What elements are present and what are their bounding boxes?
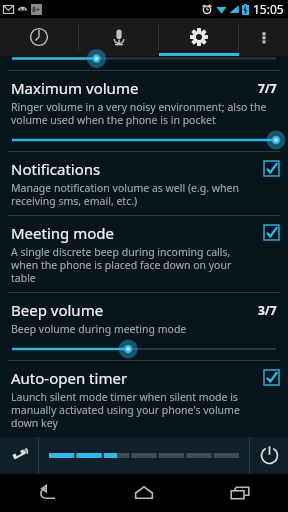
button[interactable]: Power bbox=[250, 437, 288, 474]
button[interactable] bbox=[39, 437, 249, 474]
staticText: 3/7 bbox=[258, 302, 277, 318]
staticText: Launch silent mode timer when silent mod… bbox=[11, 390, 240, 430]
button[interactable]: Auto-open timer bbox=[0, 361, 288, 437]
button[interactable] bbox=[0, 56, 288, 70]
button[interactable]: Home bbox=[96, 474, 192, 512]
button[interactable]: More options bbox=[239, 18, 288, 56]
button[interactable]: Maximum volume bbox=[0, 71, 288, 151]
button[interactable] bbox=[0, 131, 288, 149]
staticText: 8+ bbox=[32, 5, 41, 15]
button[interactable]: Beep volume bbox=[0, 293, 288, 360]
staticText: Meeting mode bbox=[11, 223, 114, 243]
staticText: 15:05 bbox=[253, 1, 284, 17]
staticText: Beep volume during meeting mode bbox=[11, 322, 187, 336]
button[interactable]: Ringer mode bbox=[0, 437, 38, 474]
button[interactable]: Timer bbox=[0, 18, 78, 56]
staticText: Notifications bbox=[11, 159, 101, 179]
staticText: A single discrete beep during incoming c… bbox=[11, 245, 232, 285]
staticText: Maximum volume bbox=[11, 78, 258, 98]
button[interactable]: Settings bbox=[159, 18, 238, 56]
staticText: Ringer volume in a very noisy environmen… bbox=[11, 100, 267, 127]
button[interactable]: Back bbox=[0, 474, 96, 512]
button[interactable]: Meeting mode bbox=[0, 216, 288, 292]
button[interactable]: Recents bbox=[192, 474, 288, 512]
button[interactable]: Notifications bbox=[0, 152, 288, 215]
staticText: Manage notification volume as well (e.g.… bbox=[11, 181, 239, 208]
button[interactable]: Voice bbox=[79, 18, 158, 56]
button[interactable] bbox=[0, 340, 288, 358]
staticText: Beep volume bbox=[11, 300, 258, 320]
staticText: Auto-open timer bbox=[11, 368, 128, 388]
staticText: 7/7 bbox=[258, 80, 277, 96]
